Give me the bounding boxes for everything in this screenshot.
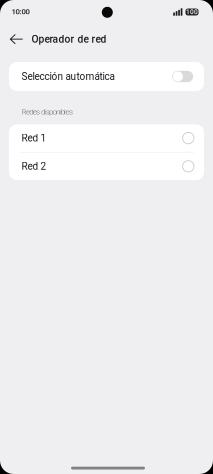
staticText: Redes disponibles: [21, 107, 73, 116]
staticText: Red 1: [21, 132, 46, 144]
staticText: Operador de red: [31, 33, 106, 45]
button[interactable]: Selección automática: [9, 62, 204, 91]
staticText: Selección automática: [21, 71, 114, 82]
button[interactable]: Red 2: [9, 153, 204, 180]
staticText: Red 2: [21, 160, 46, 172]
button[interactable]: Red 1: [9, 124, 204, 152]
staticText: 100: [186, 8, 198, 16]
staticText: 10:00: [11, 7, 29, 16]
button[interactable]: Back: [1, 24, 31, 54]
